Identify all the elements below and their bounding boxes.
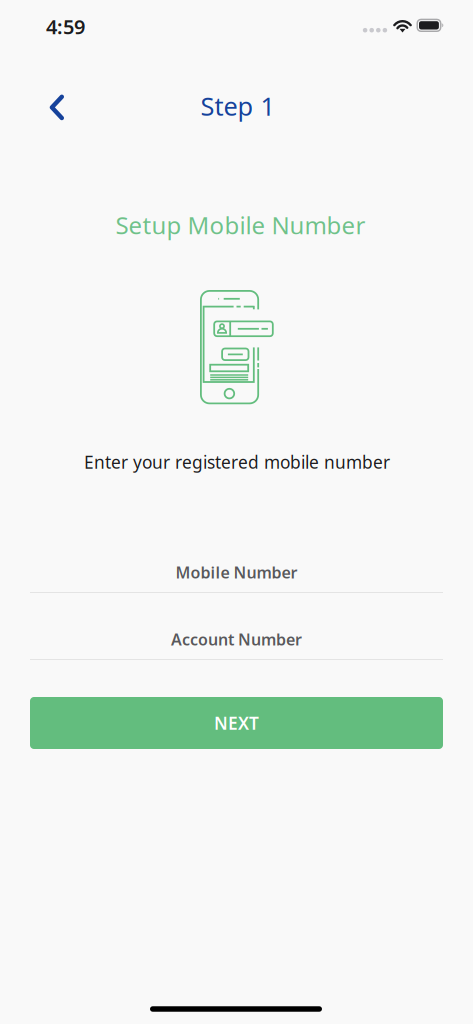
staticText: Account Number xyxy=(171,629,302,650)
staticText: Mobile Number xyxy=(175,562,297,583)
staticText: 4:59 xyxy=(46,13,85,40)
button[interactable]: Account Number xyxy=(30,616,443,660)
button[interactable]: Mobile Number xyxy=(30,549,443,593)
staticText: NEXT xyxy=(214,711,259,734)
staticText: Enter your registered mobile number xyxy=(84,450,390,473)
staticText: Setup Mobile Number xyxy=(115,209,365,241)
staticText: Step 1 xyxy=(200,89,274,123)
button[interactable]: NEXT xyxy=(30,697,443,749)
button[interactable]: Back xyxy=(33,84,81,130)
